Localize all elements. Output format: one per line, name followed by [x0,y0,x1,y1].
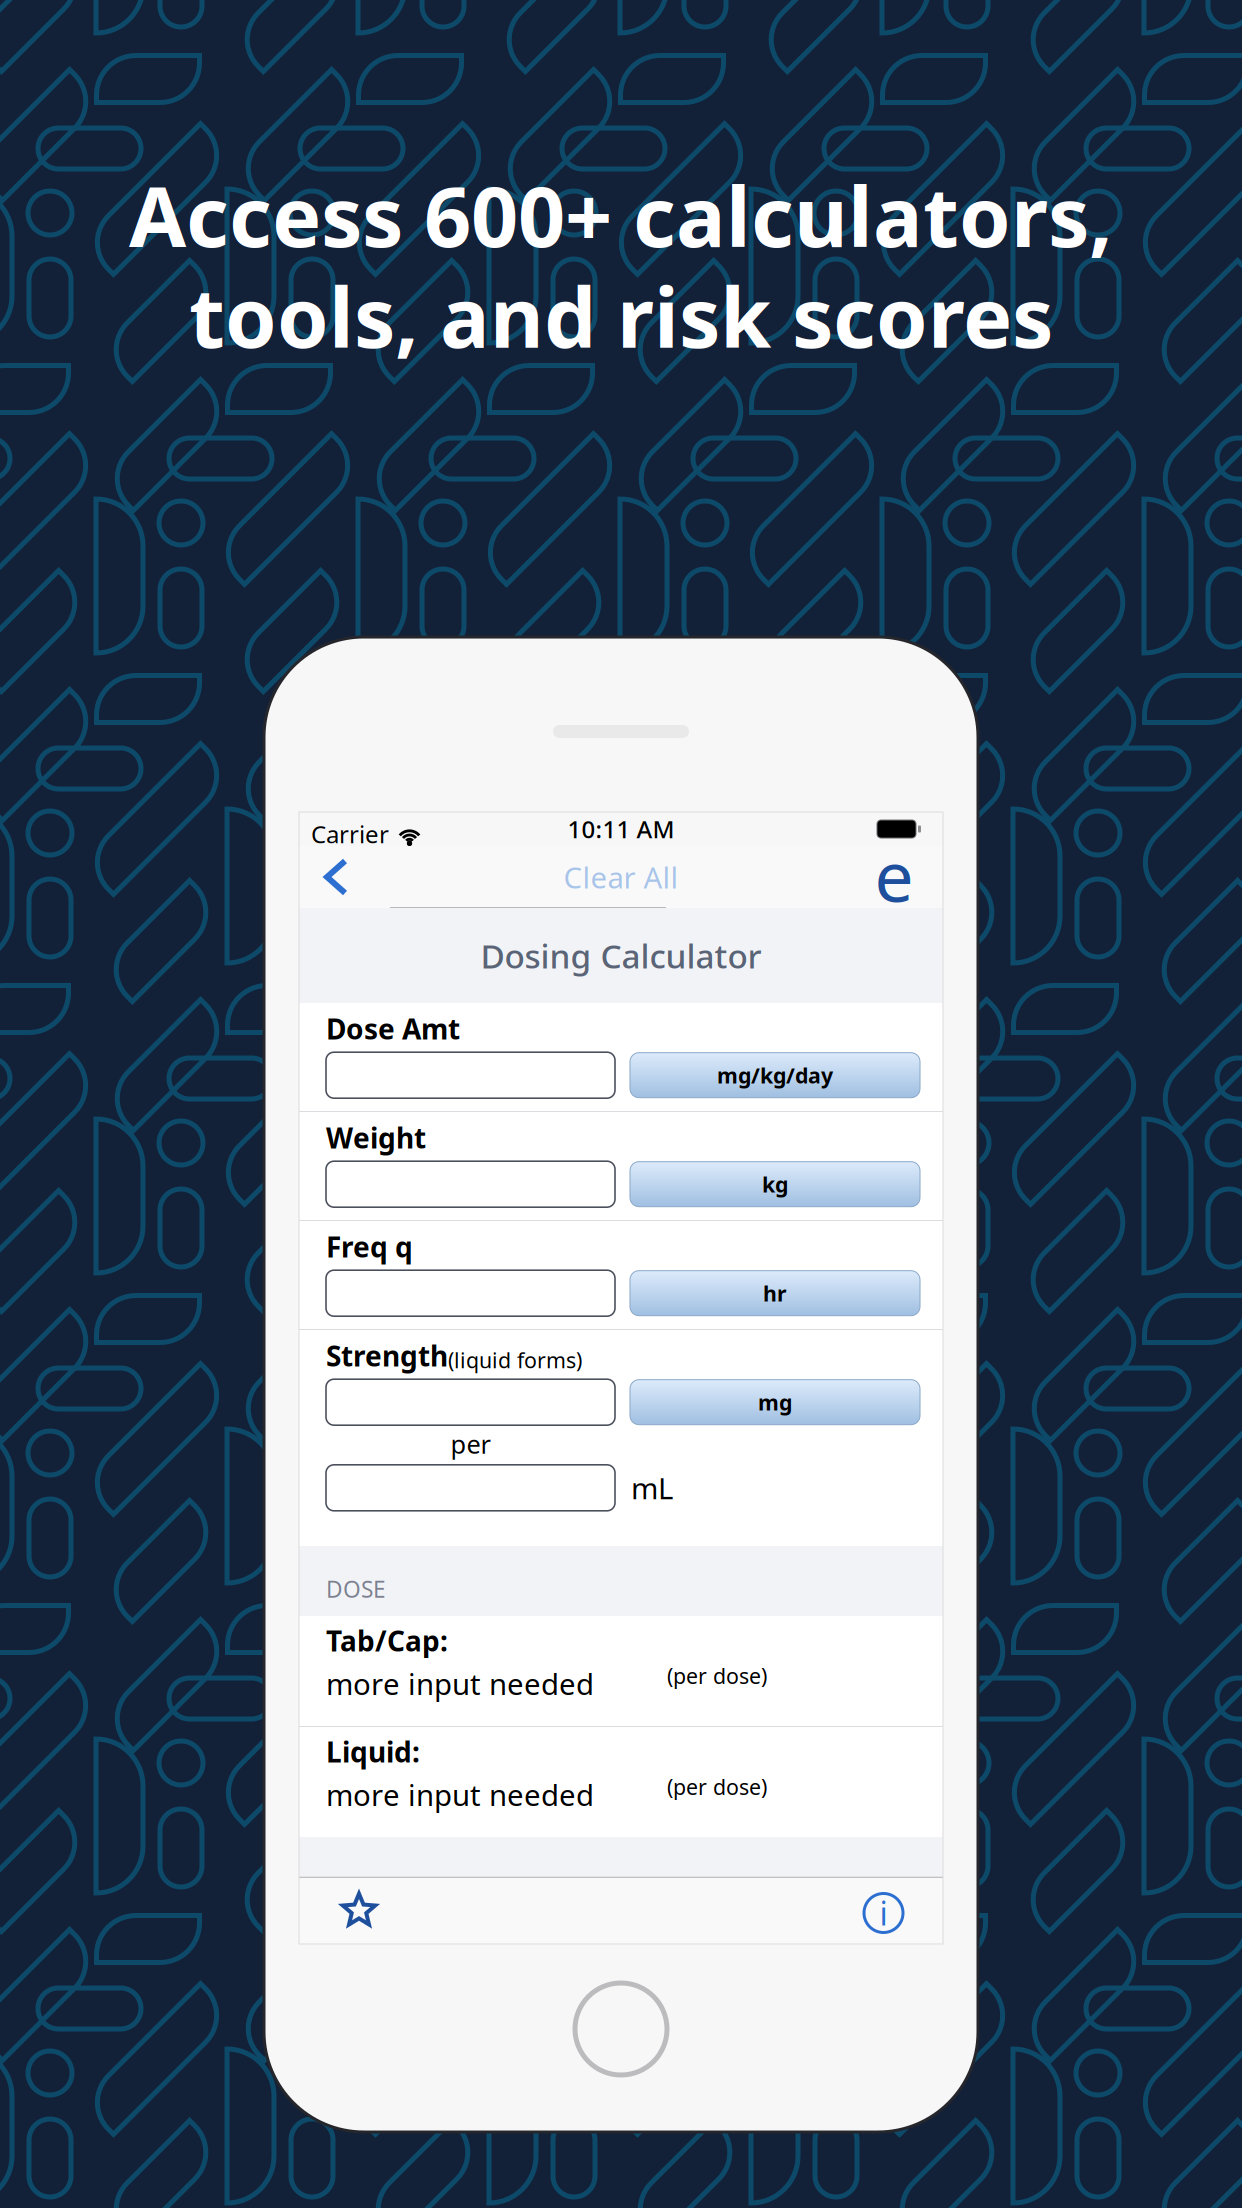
button[interactable]: mg [630,1380,920,1425]
staticText: (per dose) [667,1661,767,1690]
button[interactable]: hr [630,1271,920,1316]
button[interactable]: kg [630,1162,920,1207]
staticText: Clear All [563,857,678,896]
button[interactable]: Information [842,1877,925,1949]
button[interactable]: Weight value [326,1161,615,1207]
staticText: mg/kg/day [717,1061,833,1089]
staticText: Freq q [326,1228,413,1265]
staticText: mg [758,1388,792,1416]
button[interactable]: Volume value [326,1465,615,1511]
staticText: mL [631,1468,673,1507]
staticText: Access 600+ calculators, [129,160,1113,270]
button[interactable]: Freq q value [326,1270,615,1316]
staticText: Weight [326,1119,426,1156]
staticText: per [450,1427,490,1461]
staticText: 10:11 AM [567,813,674,845]
button[interactable]: mg/kg/day [630,1053,920,1098]
button[interactable]: Epocrates menu [862,844,926,906]
staticText: e [874,829,913,921]
staticText: Tab/Cap: [326,1622,448,1659]
button[interactable]: Strength value [326,1379,615,1425]
staticText: hr [763,1279,787,1307]
staticText: Dose Amt [326,1010,460,1047]
staticText: i [879,1892,887,1934]
staticText: more input needed [326,1664,594,1703]
staticText: Dosing Calculator [480,933,761,978]
button[interactable]: Add to favorites [319,1877,399,1945]
staticText: Liquid: [326,1733,420,1770]
staticText: (per dose) [667,1772,767,1801]
staticText: tools, and risk scores [189,261,1053,371]
staticText: more input needed [326,1775,594,1814]
staticText: (liquid forms) [448,1346,582,1374]
staticText: Carrier [311,818,389,850]
button[interactable]: Back [305,846,367,908]
staticText: DOSE [326,1574,386,1604]
staticText: kg [762,1170,788,1198]
button[interactable]: Clear All [521,846,721,908]
staticText: Strength [326,1337,448,1374]
button[interactable]: Dose Amt value [326,1052,615,1098]
